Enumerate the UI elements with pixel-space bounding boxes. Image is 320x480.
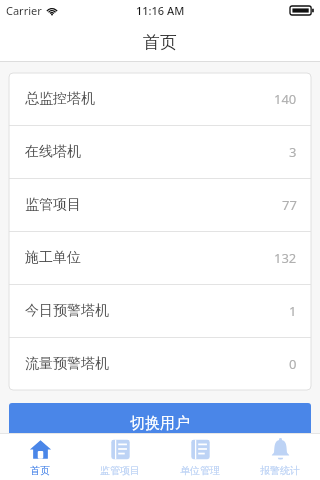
- staticText: 0: [289, 355, 297, 373]
- button[interactable]: 流量预警塔机: [9, 338, 311, 390]
- button[interactable]: 监管项目: [80, 434, 160, 480]
- button[interactable]: 单位管理: [160, 434, 240, 480]
- staticText: 监管项目: [100, 464, 140, 477]
- button[interactable]: 施工单位: [9, 232, 311, 284]
- staticText: 首页: [143, 32, 177, 53]
- staticText: 140: [274, 90, 297, 108]
- staticText: 流量预警塔机: [25, 355, 109, 373]
- staticText: Carrier: [6, 3, 42, 18]
- staticText: 今日预警塔机: [25, 302, 109, 320]
- button[interactable]: 监管项目: [9, 179, 311, 231]
- staticText: 77: [282, 196, 297, 214]
- staticText: 施工单位: [25, 249, 81, 267]
- staticText: 监管项目: [25, 196, 81, 214]
- button[interactable]: 报警统计: [240, 434, 320, 480]
- staticText: 11:16 AM: [136, 3, 185, 18]
- staticText: 1: [289, 302, 297, 320]
- button[interactable]: 今日预警塔机: [9, 285, 311, 337]
- staticText: 总监控塔机: [25, 90, 95, 108]
- staticText: 切换用户: [130, 414, 190, 433]
- button[interactable]: 首页: [0, 434, 80, 480]
- staticText: 单位管理: [180, 464, 220, 477]
- button[interactable]: 总监控塔机: [9, 73, 311, 125]
- staticText: 3: [289, 143, 297, 161]
- button[interactable]: 切换用户: [9, 403, 311, 443]
- staticText: 132: [274, 249, 297, 267]
- staticText: 首页: [30, 464, 50, 477]
- staticText: 在线塔机: [25, 143, 81, 161]
- button[interactable]: 在线塔机: [9, 126, 311, 178]
- staticText: 报警统计: [260, 464, 300, 477]
